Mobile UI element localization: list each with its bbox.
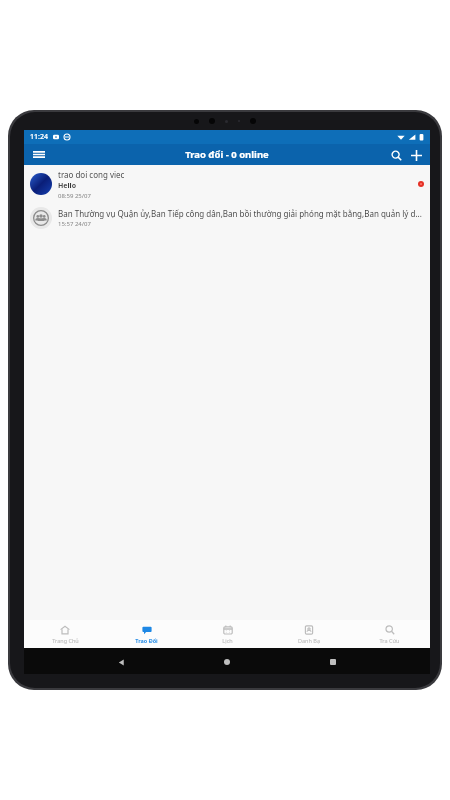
button[interactable]: Danh Bạ [268, 620, 349, 648]
staticText: Hello [58, 181, 77, 191]
staticText: Ban Thường vụ Quận ủy,Ban Tiếp công dân,… [58, 208, 422, 219]
button[interactable]: Tra Cứu [349, 620, 430, 648]
staticText: trao doi cong viec [58, 169, 125, 180]
button[interactable]: Add [406, 145, 426, 165]
button[interactable]: Menu [29, 145, 49, 165]
button[interactable]: trao doi cong viec [24, 165, 430, 203]
button[interactable]: Lịch [187, 620, 268, 648]
button[interactable]: Recents [324, 653, 342, 671]
staticText: Lịch [222, 637, 233, 644]
button[interactable]: Home [218, 653, 236, 671]
staticText: 15:57 24/07 [58, 220, 91, 228]
staticText: Tra Cứu [379, 637, 400, 644]
staticText: 11:24 [30, 132, 48, 142]
button[interactable]: Trao Đổi [106, 620, 187, 648]
button[interactable]: Back [112, 653, 130, 671]
button[interactable]: Ban Thường vụ Quận ủy,Ban Tiếp công dân,… [24, 203, 430, 233]
staticText: Trao đổi - 0 online [185, 148, 269, 161]
staticText: 08:59 25/07 [58, 192, 91, 200]
button[interactable]: Search [386, 145, 406, 165]
staticText: Danh Bạ [298, 637, 320, 644]
staticText: Trao Đổi [135, 637, 158, 644]
staticText: Trang Chủ [52, 637, 79, 644]
button[interactable]: Trang Chủ [24, 620, 106, 648]
